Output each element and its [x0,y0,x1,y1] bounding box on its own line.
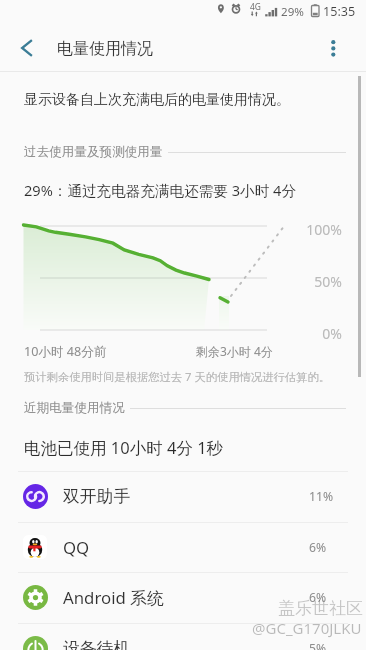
button[interactable]: More options [311,26,355,70]
staticText: 电池已使用 10小时 4分 1秒 [24,436,224,459]
staticText: 预计剩余使用时间是根据您过去 7 天的使用情况进行估算的。 [24,369,331,384]
button[interactable]: Back [5,26,49,70]
staticText: 50% [292,272,342,291]
staticText: 5% [309,640,327,650]
staticText: 剩余3小时 4分 [196,343,273,359]
staticText: 近期电量使用情况 [24,400,125,416]
staticText: 过去使用量及预测使用量 [24,144,163,160]
staticText: Android 系统 [63,586,164,609]
staticText: 11% [309,488,334,505]
staticText: 设备待机 [63,638,131,650]
staticText: 100% [292,220,342,239]
staticText: 0% [292,324,342,343]
staticText: 双开助手 [63,486,131,507]
button[interactable]: 设备待机 [0,623,366,650]
staticText: 29% [281,4,304,20]
staticText: 4G [250,1,261,12]
staticText: 15:35 [323,3,356,20]
staticText: 显示设备自上次充满电后的电量使用情况。 [24,91,290,109]
button[interactable]: 双开助手 [0,471,366,522]
staticText: @GC_G170JLKU [252,618,362,638]
staticText: 电量使用情况 [57,39,153,59]
staticText: 10小时 48分前 [24,343,107,360]
staticText: QQ [63,536,90,559]
staticText: 6% [309,589,327,606]
staticText: 6% [309,539,327,556]
staticText: 29%：通过充电器充满电还需要 3小时 4分 [24,180,297,200]
button[interactable]: QQ [0,522,366,573]
button[interactable]: Android 系统 [0,572,366,623]
staticText: 盖乐世社区 [278,598,363,619]
